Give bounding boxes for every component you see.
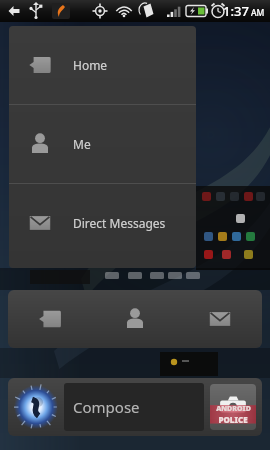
staticText: Direct Messages [73,215,166,231]
button[interactable]: Profile avatar [14,385,58,429]
button[interactable]: Attach photo [210,384,256,430]
staticText: Compose [73,397,140,417]
button[interactable]: Home timeline [8,290,92,348]
button[interactable]: Compose [64,383,204,431]
staticText: AM [251,7,265,19]
staticText: ANDROID [216,404,251,414]
button[interactable]: Direct messages [177,290,262,348]
button[interactable]: Direct Messages [9,184,196,262]
staticText: POLICE [218,414,248,425]
staticText: Home [73,57,108,73]
staticText: 1:37 [223,2,249,20]
button[interactable]: Me [9,105,196,183]
button[interactable]: Me profile [92,290,177,348]
staticText: Me [73,136,91,152]
button[interactable]: Home [9,26,196,104]
